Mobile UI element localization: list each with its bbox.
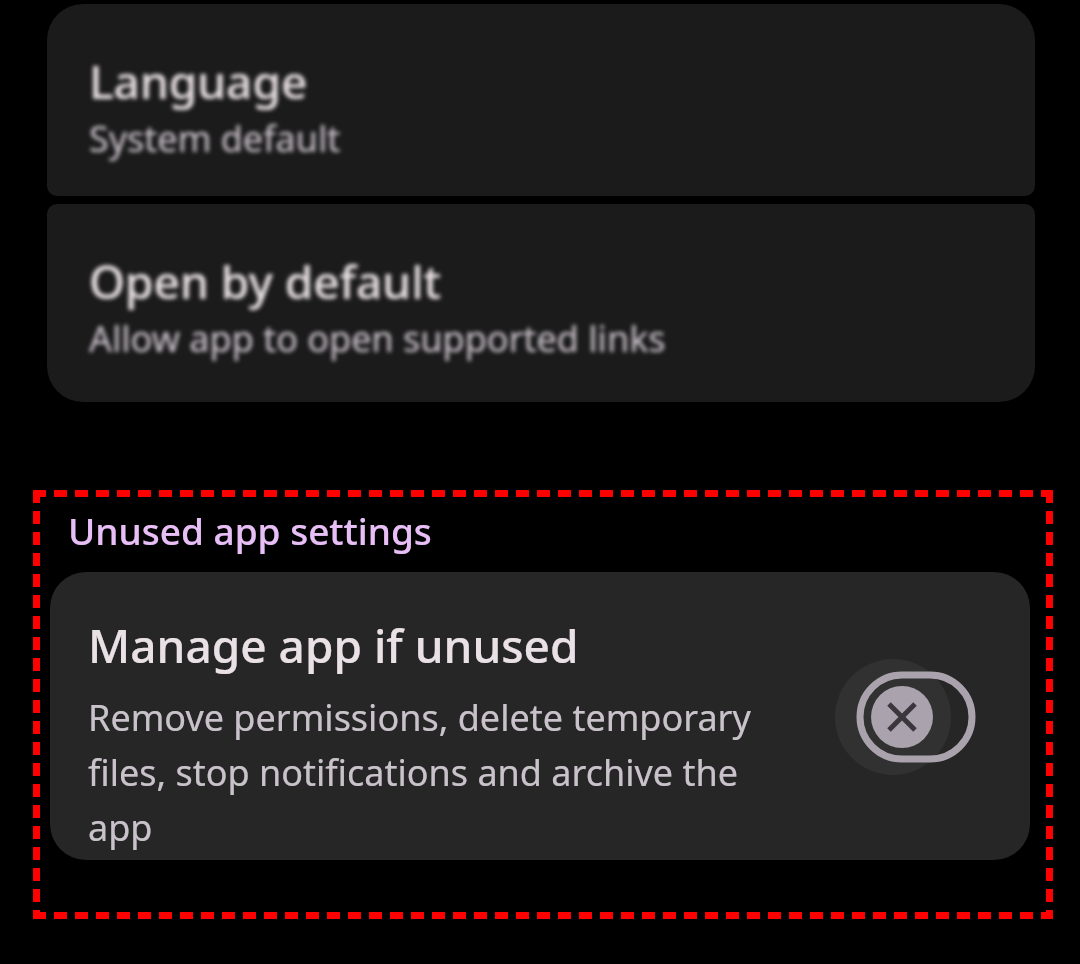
button[interactable]: Open by default — [47, 204, 1035, 402]
button[interactable]: Language — [47, 4, 1035, 196]
staticText: Remove permissions, delete temporary fil… — [88, 693, 788, 852]
staticText: Allow app to open supported links — [89, 314, 666, 363]
button[interactable]: Manage app if unused — [50, 572, 1030, 860]
staticText: System default — [89, 114, 341, 163]
staticText: Manage app if unused — [88, 614, 579, 677]
button[interactable]: Manage app if unused toggle, off — [836, 647, 996, 787]
staticText: Language — [89, 50, 308, 113]
staticText: Open by default — [89, 250, 442, 313]
staticText: Unused app settings — [68, 505, 432, 555]
